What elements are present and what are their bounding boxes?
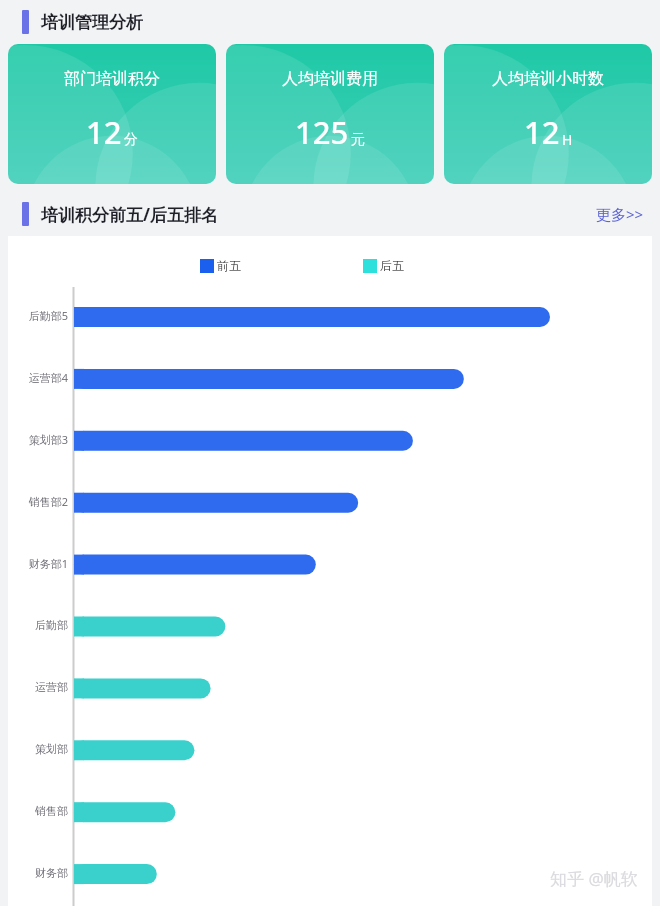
button[interactable]: 部门培训积分 — [8, 44, 216, 184]
staticText: 元 — [351, 131, 365, 149]
staticText: 12 — [524, 111, 560, 153]
staticText: 销售部2 — [28, 494, 68, 509]
staticText: 财务部 — [35, 866, 68, 880]
button[interactable]: 人均培训小时数 — [444, 44, 652, 184]
staticText: 财务部1 — [28, 556, 68, 571]
staticText: 125 — [295, 111, 349, 153]
button[interactable]: 人均培训费用 — [226, 44, 434, 184]
staticText: 12 — [86, 111, 122, 153]
staticText: 策划部3 — [28, 432, 68, 447]
staticText: H — [562, 130, 573, 149]
staticText: 更多>> — [596, 204, 644, 224]
staticText: 后五 — [380, 258, 404, 273]
staticText: 策划部 — [35, 742, 68, 756]
staticText: 分 — [124, 131, 138, 149]
staticText: 人均培训费用 — [282, 69, 378, 89]
staticText: 人均培训小时数 — [492, 69, 604, 89]
staticText: 运营部 — [35, 680, 68, 694]
staticText: 后勤部5 — [28, 308, 68, 323]
staticText: 知乎 @帆软 — [550, 867, 638, 890]
staticText: 销售部 — [35, 804, 68, 818]
staticText: 前五 — [217, 258, 241, 273]
staticText: 部门培训积分 — [64, 69, 160, 89]
staticText: 培训积分前五/后五排名 — [41, 203, 219, 226]
staticText: 后勤部 — [35, 618, 68, 632]
button[interactable]: 更多>> — [596, 204, 644, 224]
staticText: 运营部4 — [28, 370, 68, 385]
staticText: 培训管理分析 — [41, 12, 143, 33]
